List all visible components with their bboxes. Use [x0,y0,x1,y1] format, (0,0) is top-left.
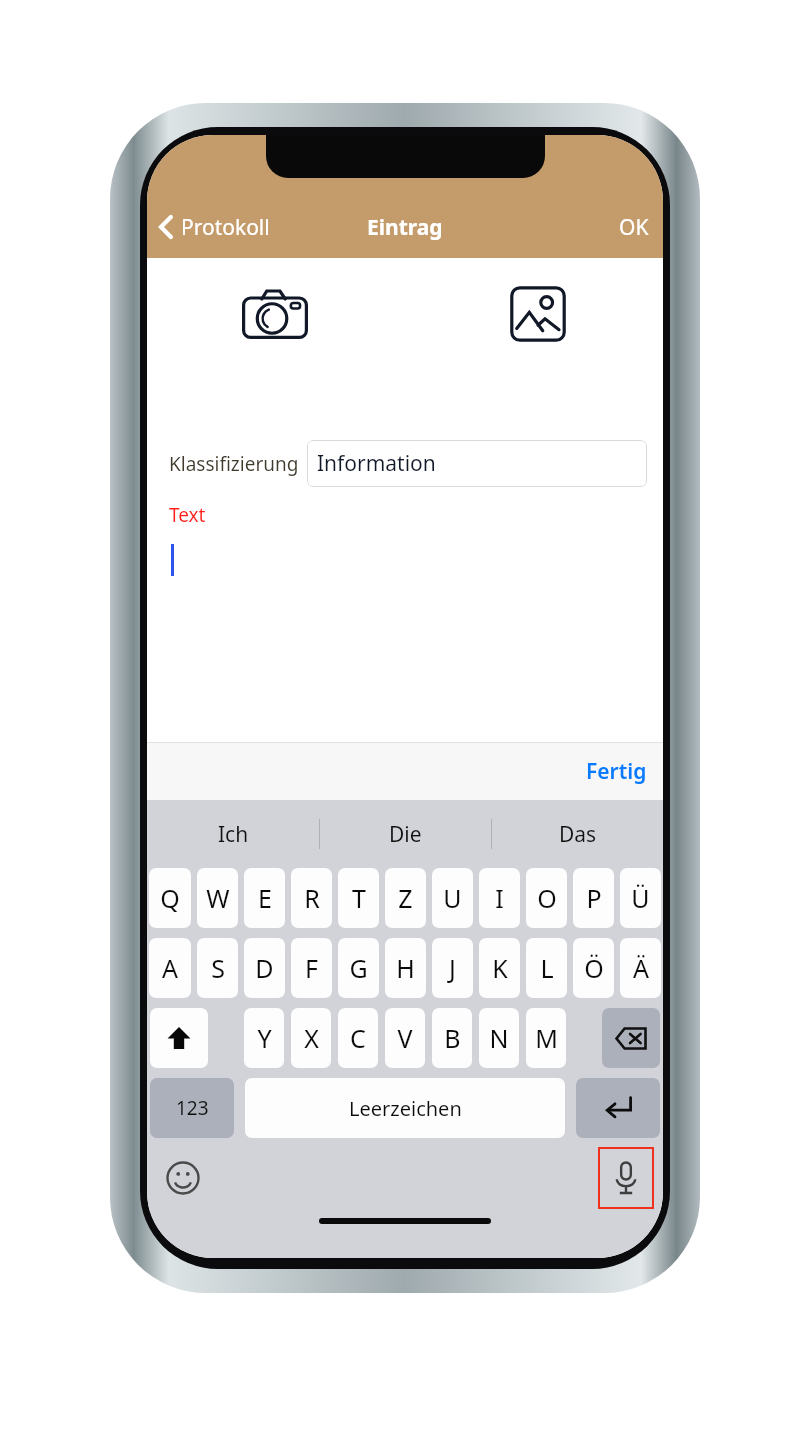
staticText: Ä [633,951,649,985]
staticText: Ich [218,820,249,849]
button[interactable]: Diktat [598,1147,654,1209]
staticText: Das [559,820,597,849]
staticText: V [397,1021,413,1055]
staticText: M [535,1021,558,1055]
button[interactable]: Kamera [238,282,312,346]
button[interactable]: V [385,1008,425,1068]
staticText: E [258,881,272,915]
button[interactable]: Q [149,868,191,928]
staticText: I [495,881,504,915]
button[interactable]: N [479,1008,519,1068]
staticText: O [537,881,557,915]
button[interactable]: P [573,868,614,928]
button[interactable]: Ü [620,868,661,928]
staticText: J [449,951,456,985]
staticText: W [206,881,230,915]
staticText: Ü [631,881,650,915]
button[interactable]: Fotobibliothek [505,281,571,347]
staticText: X [304,1021,319,1055]
button[interactable]: Die [320,800,491,868]
staticText: Q [160,881,180,915]
button[interactable]: O [526,868,567,928]
button[interactable]: M [526,1008,566,1068]
staticText: B [444,1021,461,1055]
staticText: A [162,951,178,985]
staticText: U [443,881,462,915]
staticText: OK [619,213,649,242]
button[interactable]: X [291,1008,331,1068]
button[interactable]: Leerzeichen [245,1078,565,1138]
button[interactable]: R [291,868,332,928]
button[interactable]: H [385,938,426,998]
staticText: H [396,951,415,985]
button[interactable]: Ich [147,800,319,868]
button[interactable]: D [244,938,285,998]
button[interactable]: F [291,938,332,998]
button[interactable]: Löschen [602,1008,660,1068]
staticText: T [352,881,366,915]
staticText: Protokoll [181,213,270,242]
button[interactable]: T [338,868,379,928]
staticText: Text [169,502,206,528]
staticText: S [211,951,225,985]
staticText: R [304,881,320,915]
button[interactable]: K [479,938,520,998]
button[interactable]: W [197,868,238,928]
button[interactable]: C [338,1008,378,1068]
staticText: D [255,951,274,985]
button[interactable]: E [244,868,285,928]
button[interactable]: OK [605,196,663,258]
button[interactable]: Information [307,440,647,487]
button[interactable]: Ä [620,938,661,998]
staticText: Klassifizierung [169,451,299,477]
button[interactable]: B [432,1008,472,1068]
button[interactable]: Eingabe [576,1078,660,1138]
staticText: Die [389,820,422,849]
button[interactable]: S [197,938,238,998]
button[interactable]: Ö [573,938,614,998]
staticText: Y [257,1021,272,1055]
button[interactable]: Fertig [570,742,663,800]
staticText: N [489,1021,509,1055]
staticText: K [492,951,508,985]
button[interactable]: Umschalt [150,1008,208,1068]
staticText: Z [398,881,413,915]
staticText: F [305,951,318,985]
staticText: 123 [176,1095,209,1121]
staticText: Ö [584,951,604,985]
button[interactable]: L [526,938,567,998]
button[interactable]: Protokoll [147,196,280,258]
button[interactable]: 123 [150,1078,234,1138]
button[interactable]: G [338,938,379,998]
staticText: P [586,881,602,915]
button[interactable]: J [432,938,473,998]
button[interactable]: U [432,868,473,928]
staticText: C [350,1021,366,1055]
staticText: G [349,951,368,985]
button[interactable]: Das [492,800,663,868]
button[interactable]: I [479,868,520,928]
button[interactable]: Emoji [159,1154,207,1202]
staticText: L [540,951,554,985]
staticText: Fertig [586,757,647,786]
staticText: Leerzeichen [349,1095,462,1122]
button[interactable]: Y [244,1008,284,1068]
button[interactable]: Z [385,868,426,928]
staticText: Eintrag [367,213,443,242]
button[interactable]: A [149,938,191,998]
staticText: Information [317,449,436,478]
